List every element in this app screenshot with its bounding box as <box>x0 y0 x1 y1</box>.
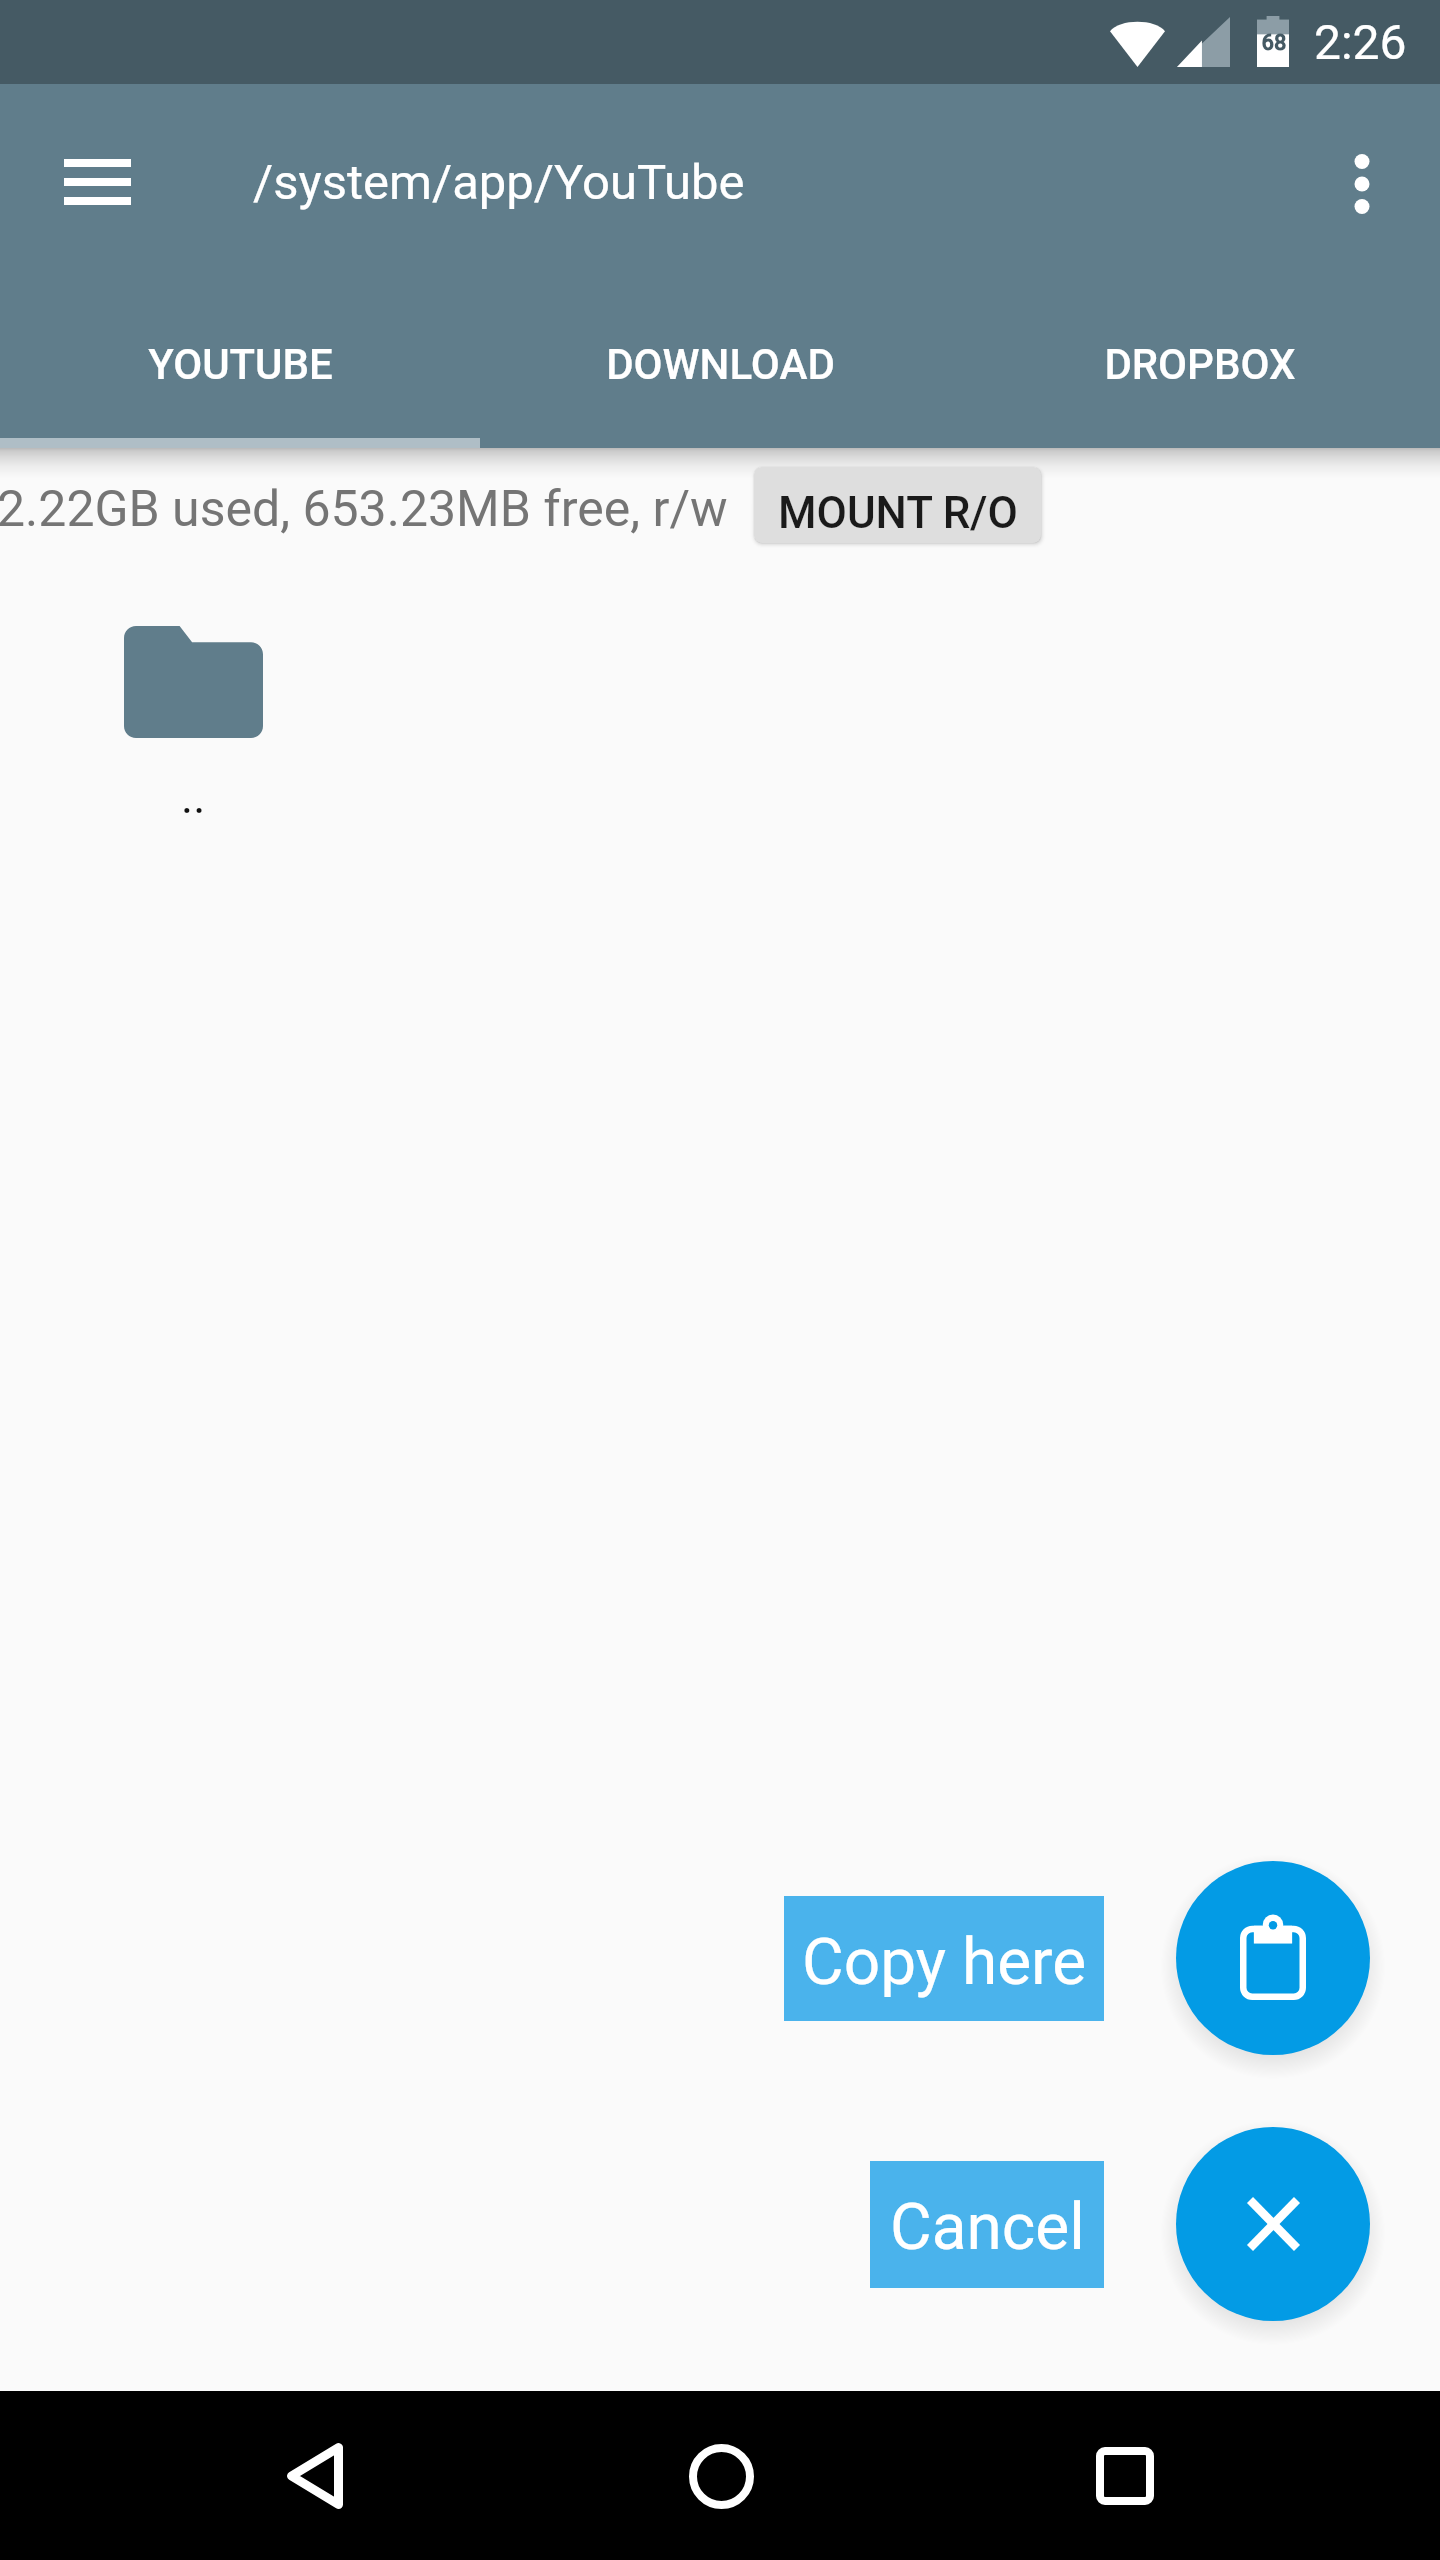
button[interactable]: Parent folder <box>124 626 263 824</box>
staticText: YOUTUBE <box>148 340 333 389</box>
staticText: DOWNLOAD <box>606 340 835 389</box>
staticText: Cancel <box>890 2190 1085 2265</box>
staticText: .. <box>181 770 206 824</box>
button[interactable]: Copy here <box>1176 1861 1370 2055</box>
staticText: MOUNT R/O <box>778 487 1018 539</box>
staticText: /system/app/YouTube <box>253 154 745 211</box>
staticText: 2.22GB used, 653.23MB free, r/w <box>0 480 728 539</box>
button[interactable]: Cancel <box>1176 2127 1370 2321</box>
staticText: 68 <box>1258 30 1290 56</box>
button[interactable]: Home <box>661 2416 781 2536</box>
button[interactable]: Cancel <box>870 2161 1104 2288</box>
staticText: 2:26 <box>1314 14 1407 70</box>
button[interactable]: Open navigation drawer <box>49 134 145 230</box>
button[interactable]: Recents <box>1065 2416 1185 2536</box>
button[interactable]: Back <box>255 2416 375 2536</box>
staticText: DROPBOX <box>1104 340 1296 389</box>
button[interactable]: DROPBOX <box>960 280 1440 448</box>
button[interactable]: DOWNLOAD <box>480 280 960 448</box>
button[interactable]: Copy here <box>784 1896 1104 2021</box>
button[interactable]: YOUTUBE <box>0 280 480 448</box>
button[interactable]: MOUNT R/O <box>754 467 1041 543</box>
button[interactable]: More options <box>1314 134 1410 230</box>
staticText: Copy here <box>802 1925 1087 2000</box>
